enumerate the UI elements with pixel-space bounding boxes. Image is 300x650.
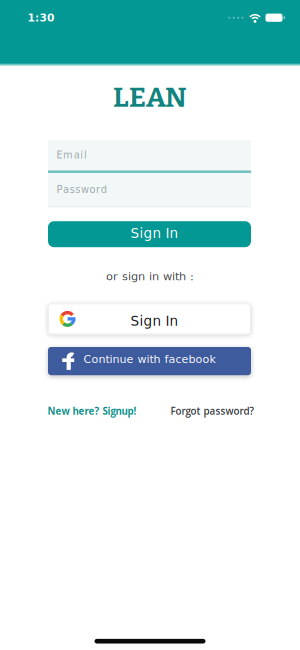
staticText: Sign In (130, 225, 178, 241)
staticText: Email (56, 149, 87, 161)
staticText: Continue with facebook (83, 353, 215, 366)
button[interactable]: Continue with facebook (48, 347, 251, 375)
staticText: 1:30 (27, 11, 54, 24)
staticText: LEAN (113, 80, 187, 114)
staticText: New here? Signup! (47, 404, 136, 418)
staticText: Forgot password? (170, 404, 253, 418)
staticText: Password (56, 184, 107, 195)
staticText: Sign In (130, 313, 178, 329)
staticText: or sign in with : (106, 270, 194, 283)
button[interactable]: New here? Signup! (47, 404, 136, 418)
button[interactable]: Sign In (48, 303, 251, 334)
button[interactable]: Sign In (48, 221, 251, 247)
button[interactable]: Forgot password? (170, 404, 253, 418)
